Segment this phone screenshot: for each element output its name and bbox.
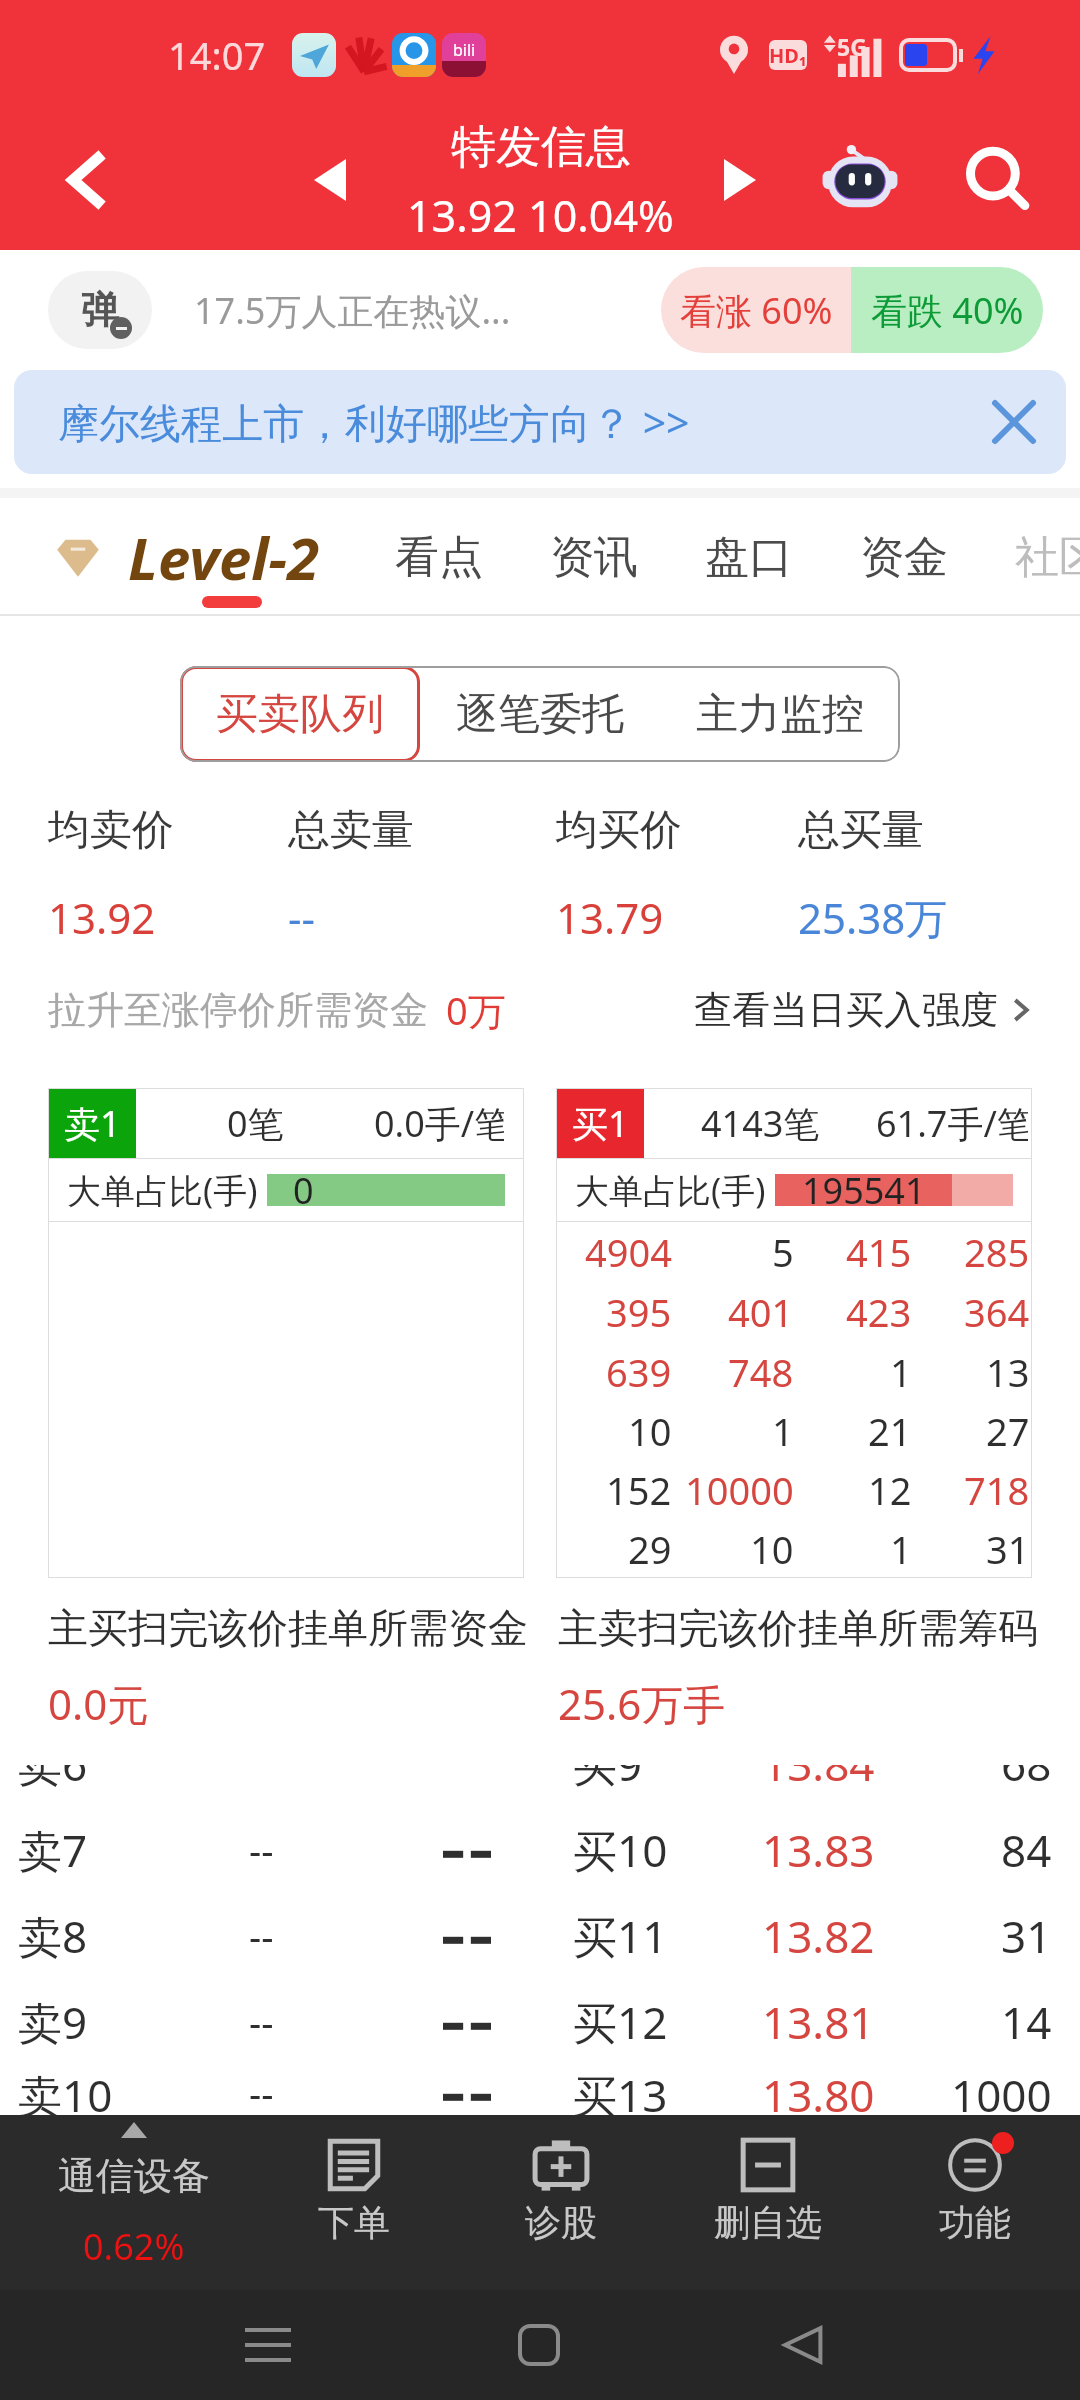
button[interactable]: 卖8 (0, 1893, 1080, 1979)
staticText: HD₁ (769, 42, 807, 69)
button[interactable]: 卖10 (0, 2065, 1080, 2121)
button[interactable]: 看点 (395, 530, 483, 585)
staticText: 主力监控 (696, 688, 864, 741)
staticText: bili (453, 39, 476, 61)
staticText: 415 (846, 1226, 912, 1278)
button[interactable]: 删自选 (664, 2115, 871, 2290)
staticText: 下单 (318, 2200, 390, 2245)
staticText: 删自选 (714, 2200, 822, 2245)
button[interactable]: 盘口 (705, 530, 793, 585)
staticText: 27 (986, 1405, 1030, 1457)
button[interactable]: AI assistant (810, 130, 910, 230)
staticText: 总卖量 (288, 804, 414, 857)
staticText: 61.7手/笔 (876, 1099, 1028, 1148)
staticText: 大单占比(手) (575, 1167, 766, 1213)
button[interactable]: Previous stock (290, 140, 370, 220)
staticText: 10 (628, 1405, 672, 1457)
staticText: 主卖扫完该价挂单所需筹码 (558, 1603, 1038, 1653)
button[interactable]: 资讯 (550, 530, 638, 585)
button[interactable]: Home (499, 2305, 579, 2385)
staticText: 功能 (939, 2200, 1011, 2245)
staticText: 31 (1001, 1906, 1052, 1966)
staticText: 摩尔线程上市，利好哪些方向？ >> (58, 394, 690, 450)
button[interactable]: 主力监控 (660, 666, 900, 762)
button[interactable]: 逐笔委托 (420, 666, 660, 762)
staticText: 13.84 (762, 1765, 875, 1794)
button[interactable]: 功能 (871, 2115, 1078, 2290)
staticText: 查看当日买入强度 (694, 986, 998, 1034)
staticText: 13.92 10.04% (407, 186, 674, 245)
staticText: -- (288, 889, 316, 946)
staticText: 14 (1001, 1992, 1052, 2052)
staticText: 大单占比(手) (67, 1167, 258, 1213)
staticText: 84 (1001, 1820, 1052, 1880)
button[interactable]: 卖6 (0, 1765, 1080, 1807)
button[interactable]: Close (976, 384, 1052, 460)
staticText: 卖6 (18, 1765, 88, 1794)
staticText: -- (249, 1996, 274, 2048)
staticText: 买9 (573, 1765, 643, 1794)
staticText: 13.79 (556, 889, 664, 946)
staticText: 均卖价 (48, 804, 174, 857)
button[interactable]: 诊股 (457, 2115, 664, 2290)
staticText: 0 (293, 1166, 314, 1214)
staticText: 13.80 (762, 2065, 875, 2121)
staticText: 13 (986, 1346, 1030, 1398)
staticText: 卖1 (64, 1099, 121, 1148)
staticText: 4904 (585, 1226, 672, 1278)
staticText: 买12 (573, 1992, 668, 2052)
button[interactable]: 下单 (250, 2115, 457, 2290)
staticText: 21 (868, 1405, 912, 1457)
staticText: 总买量 (798, 804, 924, 857)
staticText: 0笔 (227, 1099, 284, 1148)
staticText: 看跌 40% (871, 286, 1024, 335)
staticText: -- (249, 2067, 274, 2119)
staticText: 14:07 (168, 29, 266, 81)
staticText: 买11 (573, 1906, 668, 1966)
staticText: 买1 (572, 1099, 629, 1148)
button[interactable]: 卖9 (0, 1979, 1080, 2065)
staticText: 195541 (802, 1166, 926, 1214)
button[interactable]: 弹 (0, 250, 1080, 370)
staticText: 31 (986, 1523, 1030, 1575)
button[interactable]: 通信设备 (18, 2115, 250, 2290)
staticText: 4143笔 (701, 1099, 820, 1148)
staticText: 0.0手/笔 (374, 1099, 504, 1148)
button[interactable]: Back (762, 2305, 842, 2385)
staticText: 25.6万手 (558, 1675, 726, 1732)
button[interactable]: Back (42, 136, 130, 224)
staticText: 5 (772, 1226, 794, 1278)
staticText: 1 (772, 1405, 794, 1457)
button[interactable]: 卖7 (0, 1807, 1080, 1893)
button[interactable]: 资金 (860, 530, 948, 585)
staticText: 卖9 (18, 1992, 88, 2052)
staticText: 特发信息 (451, 119, 631, 176)
button[interactable]: Level-2 (52, 518, 320, 597)
button[interactable]: Search (948, 130, 1048, 230)
staticText: 364 (964, 1286, 1030, 1338)
button[interactable]: 社区 (1015, 530, 1080, 585)
staticText: 卖7 (18, 1820, 88, 1880)
staticText: 395 (606, 1286, 672, 1338)
staticText: 13.83 (762, 1820, 875, 1880)
staticText: 718 (964, 1464, 1030, 1516)
staticText: Level-2 (128, 518, 320, 597)
staticText: 买13 (573, 2065, 668, 2121)
staticText: 639 (606, 1346, 672, 1398)
staticText: 逐笔委托 (456, 688, 624, 741)
staticText: 152 (606, 1464, 672, 1516)
staticText: 0.0元 (48, 1675, 150, 1732)
staticText: 拉升至涨停价所需资金 (48, 986, 428, 1034)
staticText: 0万 (446, 984, 506, 1036)
staticText: 285 (964, 1226, 1030, 1278)
staticText: 卖10 (18, 2065, 113, 2121)
button[interactable]: 买卖队列 (180, 666, 420, 762)
staticText: 25.38万 (798, 889, 948, 946)
staticText: 17.5万人正在热议... (194, 286, 511, 335)
button[interactable]: 摩尔线程上市，利好哪些方向？ >> (14, 370, 1066, 474)
button[interactable]: Next stock (700, 140, 780, 220)
button[interactable]: Recent apps (228, 2305, 308, 2385)
staticText: 看涨 60% (680, 286, 833, 335)
staticText: 13.82 (762, 1906, 875, 1966)
button[interactable]: 查看当日买入强度 (694, 986, 1034, 1034)
